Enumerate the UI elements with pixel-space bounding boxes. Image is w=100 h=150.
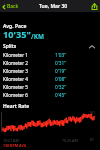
button[interactable]: Back [0, 3, 19, 10]
button[interactable]: Splits [3, 42, 96, 51]
staticText: 0'19" [55, 68, 67, 75]
staticText: Kilometer 3 [3, 68, 28, 74]
staticText: Tue, Mar 30 [39, 3, 68, 10]
staticText: 0'08" [55, 76, 67, 83]
staticText: Kilometer 6 [3, 92, 28, 98]
staticText: 1'03" [55, 52, 67, 59]
button[interactable]: Kilometer 2 [3, 59, 96, 67]
staticText: Kilometer 2 [3, 60, 28, 66]
staticText: Avg. Pace [3, 23, 27, 30]
staticText: Kilometer 4 [3, 76, 28, 82]
staticText: 10:26 AM [62, 138, 78, 143]
staticText: 138 BPM AVG [3, 143, 27, 148]
staticText: Kilometer 5 [3, 84, 28, 90]
staticText: /KM [31, 32, 44, 41]
staticText: 161 [89, 110, 96, 115]
button[interactable]: Kilometer 6 [3, 91, 96, 99]
staticText: 0'45" [55, 92, 67, 99]
button[interactable]: Kilometer 5 [3, 83, 96, 91]
staticText: 0'31" [55, 60, 67, 67]
staticText: Heart Rate [3, 103, 30, 110]
staticText: 0'32" [55, 84, 67, 91]
button[interactable]: Share [89, 1, 100, 12]
button[interactable]: Kilometer 3 [3, 67, 96, 75]
staticText: 10'35" [3, 28, 31, 41]
staticText: 10:21 AM [3, 138, 19, 143]
staticText: Back [7, 3, 19, 10]
staticText: 87 [90, 137, 95, 142]
staticText: Kilometer 1 [3, 52, 28, 58]
button[interactable]: Kilometer 1 [3, 51, 96, 59]
staticText: Splits [3, 43, 17, 50]
button[interactable]: Kilometer 4 [3, 75, 96, 83]
